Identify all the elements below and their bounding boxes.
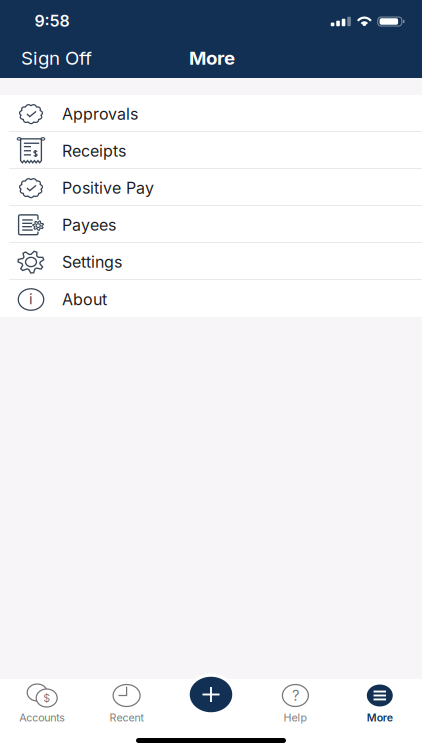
staticText: i — [29, 290, 33, 308]
staticText: Settings — [62, 252, 122, 272]
staticText: More — [189, 47, 235, 69]
button[interactable] — [169, 679, 253, 727]
button[interactable]: ? — [253, 679, 338, 727]
button[interactable]: Approvals — [0, 95, 422, 132]
staticText: 9:58 — [34, 11, 69, 31]
button[interactable]: Positive Pay — [0, 169, 422, 206]
button[interactable]: Receipts — [0, 132, 422, 169]
button[interactable]: Recent — [84, 679, 169, 727]
staticText: Receipts — [62, 141, 126, 161]
staticText: Payees — [62, 215, 116, 235]
button[interactable]: More — [338, 679, 422, 727]
staticText: More — [367, 711, 393, 724]
staticText: Sign Off — [21, 47, 92, 69]
staticText: Help — [283, 711, 307, 724]
staticText: Recent — [110, 711, 144, 724]
button[interactable]: i — [0, 280, 422, 317]
staticText: ? — [292, 687, 299, 704]
button[interactable]: Settings — [0, 243, 422, 280]
staticText: About — [62, 290, 107, 309]
button[interactable]: Sign Off — [0, 41, 106, 75]
staticText: Accounts — [19, 711, 65, 724]
button[interactable]: Payees — [0, 206, 422, 243]
button[interactable]: New transaction — [186, 673, 235, 715]
staticText: Approvals — [62, 104, 138, 124]
staticText: $ — [43, 691, 50, 704]
button[interactable]: $ — [0, 679, 84, 727]
staticText: Positive Pay — [62, 178, 154, 198]
